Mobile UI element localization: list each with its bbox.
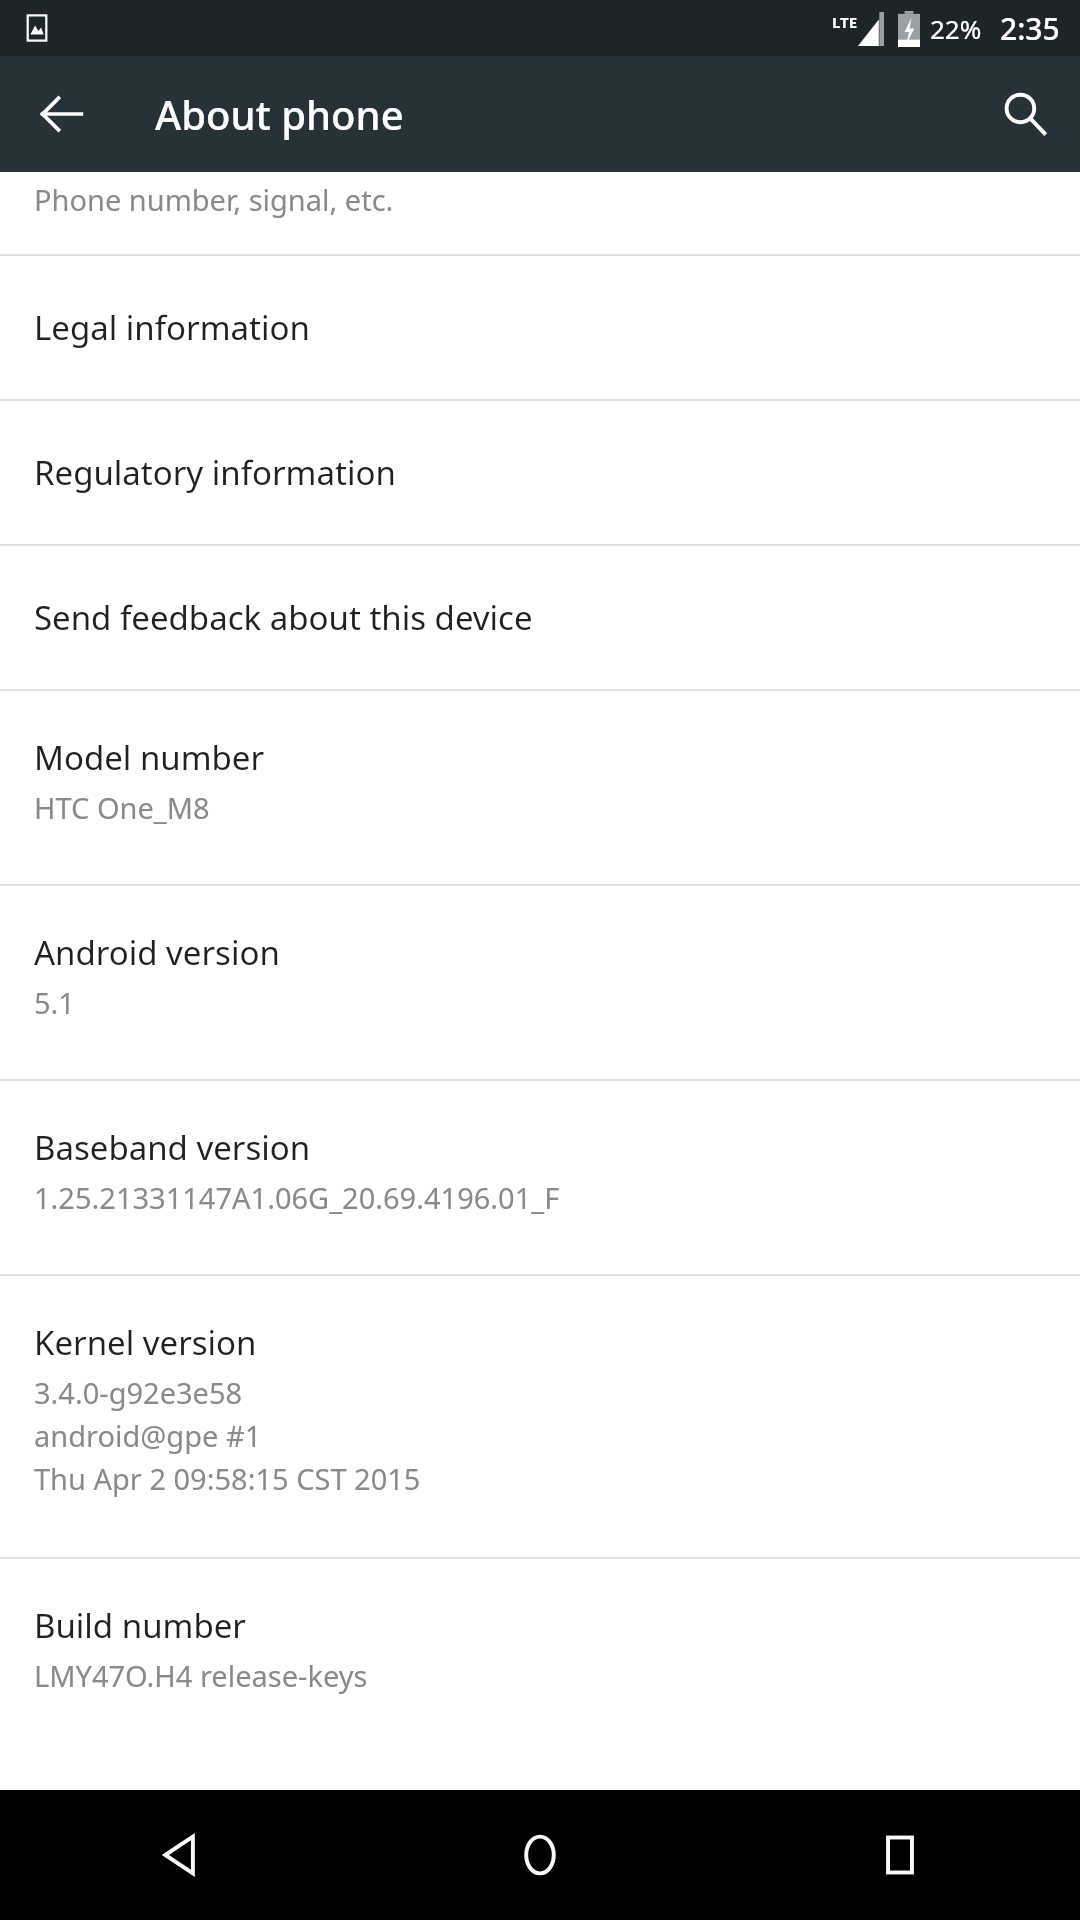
button[interactable]: Android version bbox=[0, 886, 1080, 1079]
button[interactable]: Phone number, signal, etc. bbox=[0, 172, 1080, 254]
button[interactable]: Legal information bbox=[0, 256, 1080, 399]
button[interactable]: Regulatory information bbox=[0, 401, 1080, 544]
button[interactable]: Recent apps bbox=[720, 1790, 1080, 1920]
staticText: 2:35 bbox=[1000, 8, 1060, 49]
button[interactable]: Home bbox=[360, 1790, 720, 1920]
staticText: LMY47O.H4 release-keys bbox=[34, 1656, 368, 1695]
staticText: Build number bbox=[34, 1603, 246, 1648]
button[interactable]: Send feedback about this device bbox=[0, 546, 1080, 689]
staticText: 22% bbox=[930, 11, 982, 46]
button[interactable]: Baseband version bbox=[0, 1081, 1080, 1274]
staticText: 3.4.0-g92e3e58 bbox=[34, 1373, 243, 1412]
staticText: About phone bbox=[155, 87, 404, 141]
button[interactable]: Model number bbox=[0, 691, 1080, 884]
staticText: Legal information bbox=[34, 305, 310, 350]
staticText: Thu Apr 2 09:58:15 CST 2015 bbox=[34, 1459, 421, 1498]
staticText: Phone number, signal, etc. bbox=[34, 180, 394, 219]
staticText: 5.1 bbox=[34, 983, 75, 1022]
button[interactable]: Kernel version bbox=[0, 1276, 1080, 1557]
staticText: 1.25.21331147A1.06G_20.69.4196.01_F bbox=[34, 1178, 560, 1217]
button[interactable]: Back bbox=[22, 74, 102, 154]
staticText: HTC One_M8 bbox=[34, 788, 210, 827]
staticText: LTE bbox=[832, 12, 858, 32]
staticText: android@gpe #1 bbox=[34, 1416, 262, 1455]
staticText: Send feedback about this device bbox=[34, 595, 533, 640]
staticText: Baseband version bbox=[34, 1125, 311, 1170]
button[interactable]: Search bbox=[980, 69, 1070, 159]
staticText: Android version bbox=[34, 930, 280, 975]
staticText: Kernel version bbox=[34, 1320, 257, 1365]
staticText: Model number bbox=[34, 735, 265, 780]
button[interactable]: Build number bbox=[0, 1559, 1080, 1752]
button[interactable]: Back bbox=[0, 1790, 360, 1920]
staticText: Regulatory information bbox=[34, 450, 396, 495]
